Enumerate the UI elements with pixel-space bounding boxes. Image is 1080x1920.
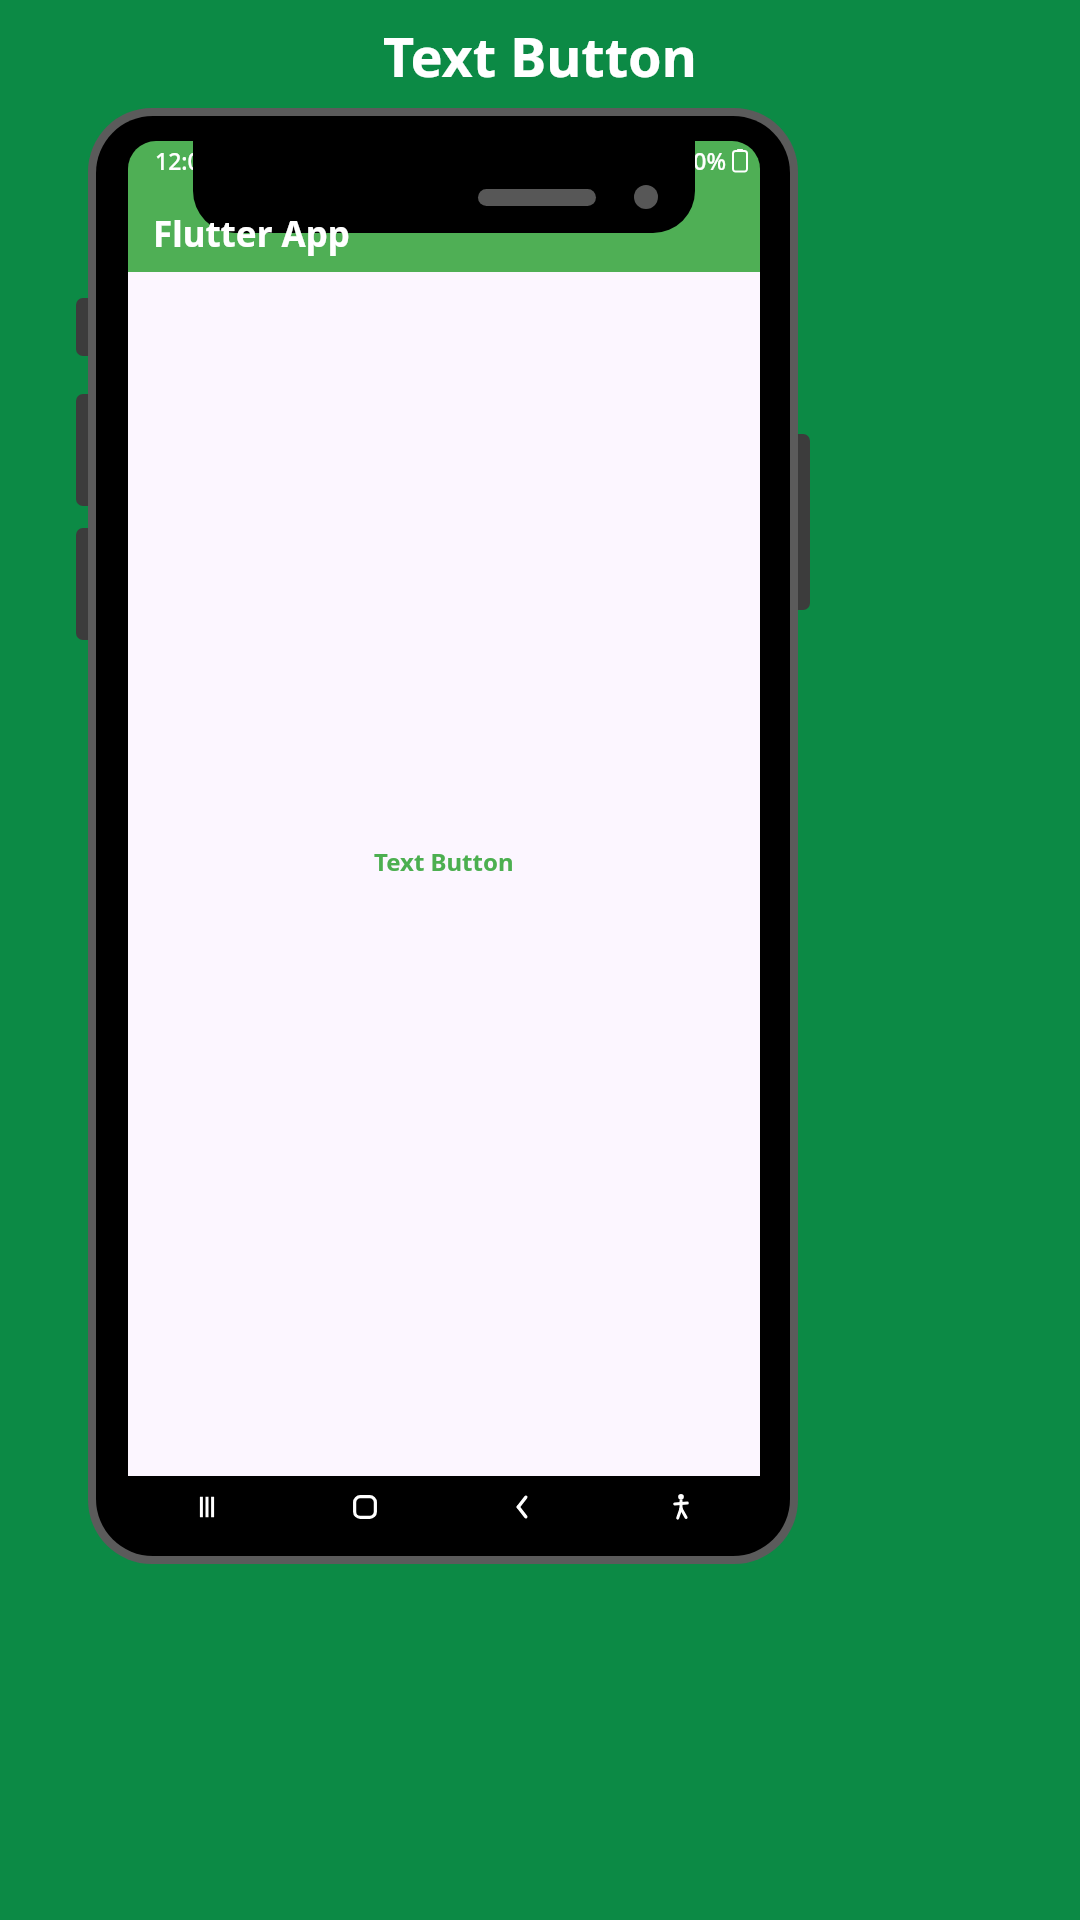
staticText: Flutter App [153, 210, 350, 258]
staticText: Text Button [374, 845, 514, 878]
button[interactable]: Recent apps [128, 1476, 286, 1537]
button[interactable]: Accessibility [602, 1476, 760, 1537]
button[interactable]: Home [286, 1476, 444, 1537]
staticText: 12:04 [155, 145, 214, 176]
staticText: Text Button [383, 19, 697, 93]
button[interactable]: Back [444, 1476, 602, 1537]
button[interactable]: Text Button [358, 835, 530, 888]
staticText: 100% [667, 145, 727, 176]
